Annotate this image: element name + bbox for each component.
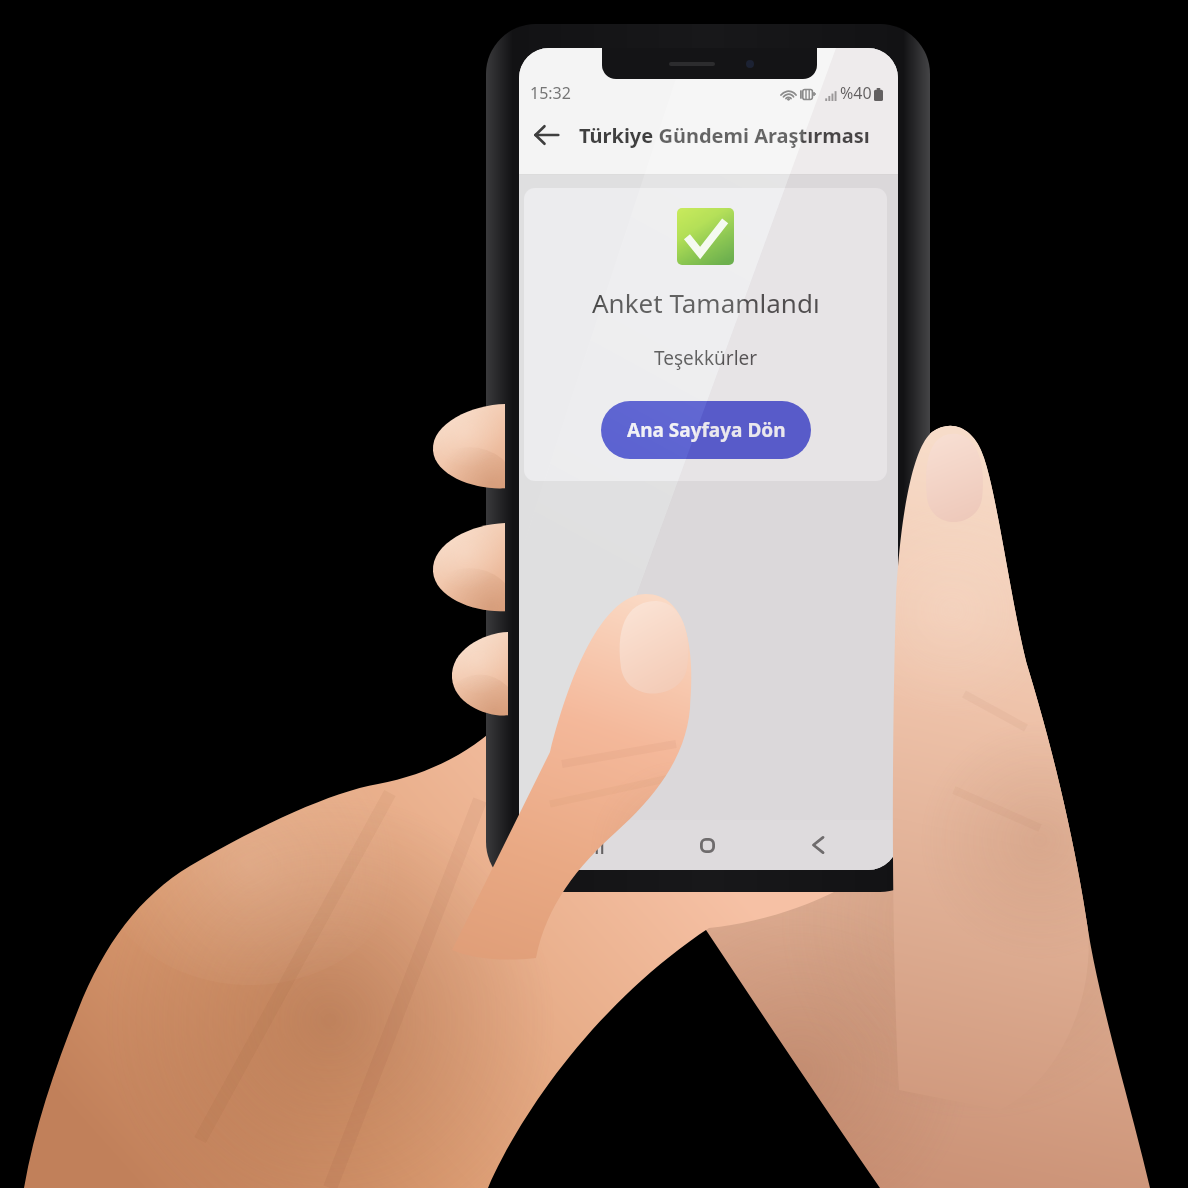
staticText: Türkiye Gündemi Araştırması xyxy=(579,122,870,149)
staticText: Anket Tamamlandı xyxy=(592,285,820,320)
button[interactable]: Back xyxy=(798,827,838,863)
staticText: %40 xyxy=(840,82,872,104)
staticText: Ana Sayfaya Dön xyxy=(627,417,786,443)
button[interactable]: Recents xyxy=(577,827,617,863)
staticText: 15:32 xyxy=(530,82,571,104)
staticText: Teşekkürler xyxy=(654,345,758,371)
button[interactable]: Home xyxy=(687,827,727,863)
button[interactable]: Ana Sayfaya Dön xyxy=(601,401,811,459)
button[interactable]: Back xyxy=(525,114,567,156)
